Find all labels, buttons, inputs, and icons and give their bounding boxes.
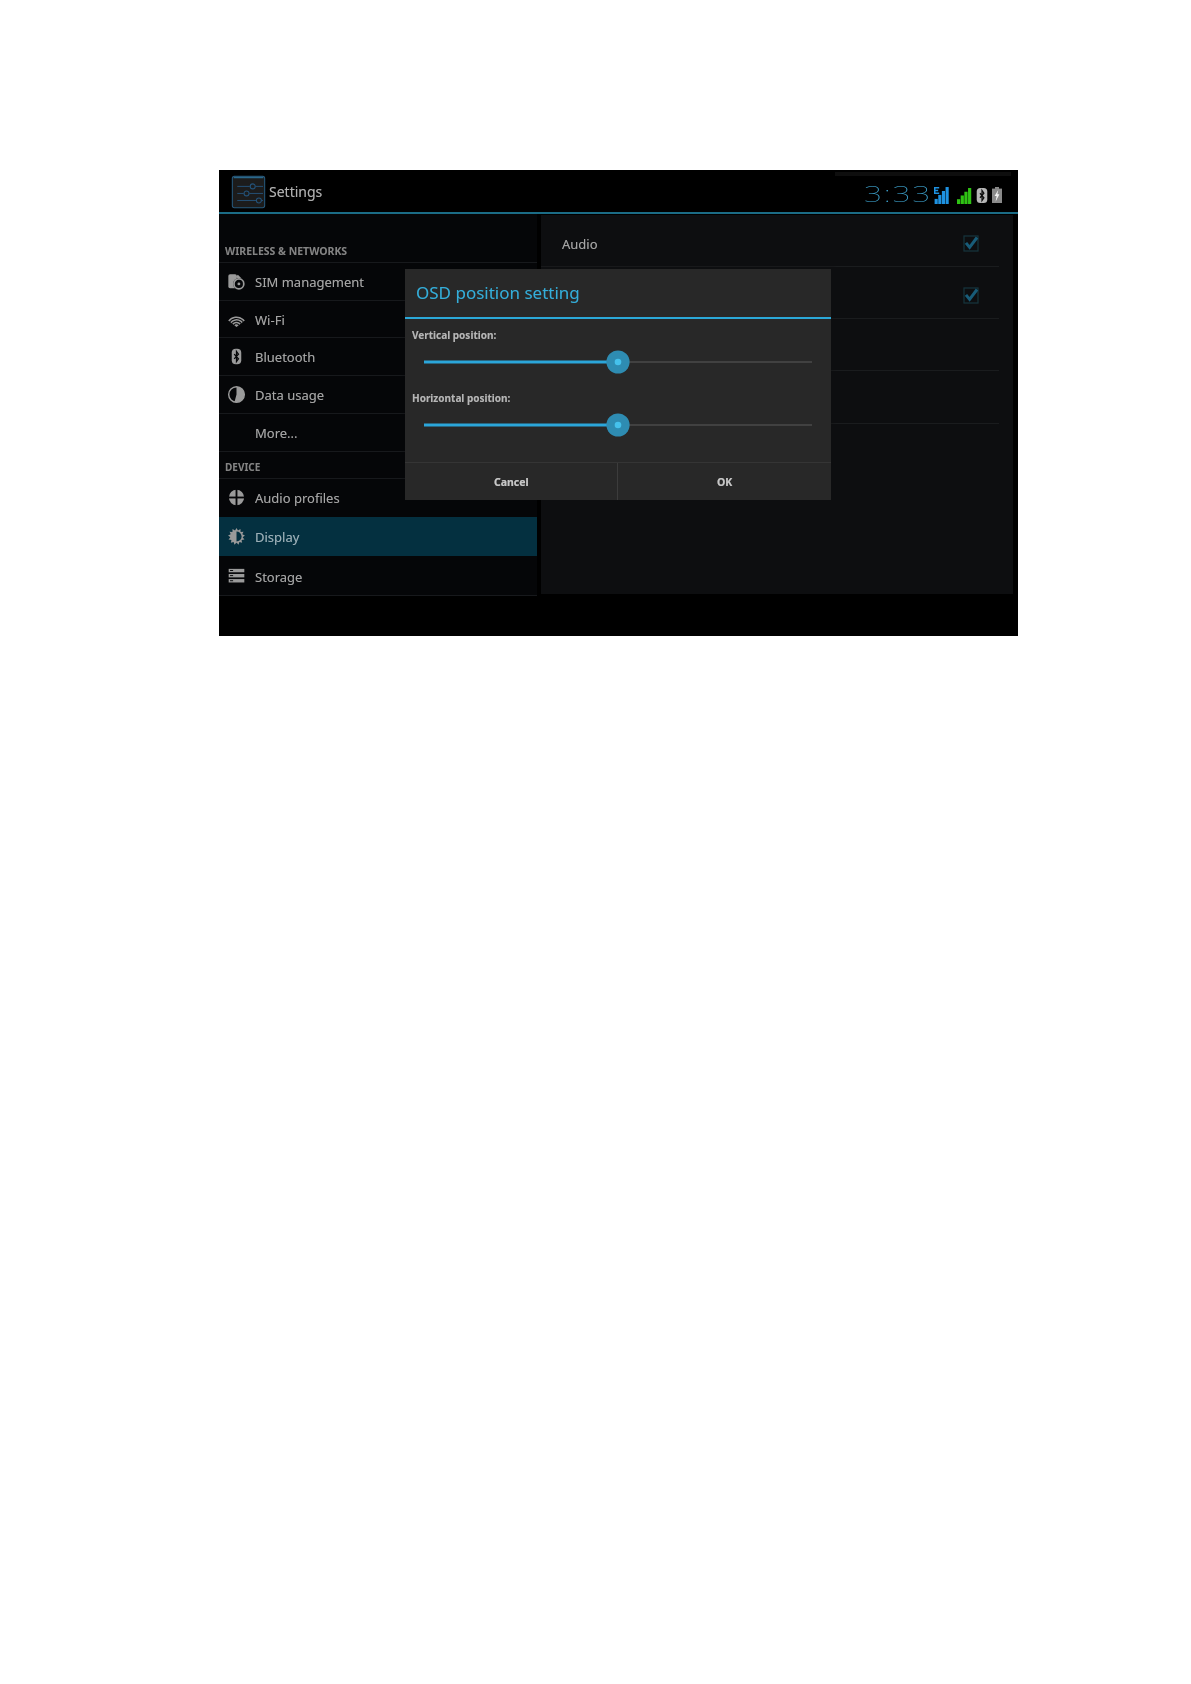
button[interactable]: SIM management — [219, 262, 537, 301]
staticText: WIRELESS & NETWORKS — [225, 244, 348, 258]
staticText: Vertical position: — [412, 328, 497, 342]
button[interactable]: Bluetooth — [219, 337, 537, 376]
staticText: OK — [717, 475, 733, 489]
button[interactable]: Audio — [541, 215, 1013, 266]
button[interactable]: Audio profiles — [219, 478, 537, 517]
button[interactable]: Horizontal position slider — [424, 412, 812, 438]
staticText: Storage — [255, 568, 303, 586]
staticText: Bluetooth — [255, 348, 316, 366]
button[interactable]: OK — [618, 463, 831, 500]
staticText: Display — [255, 528, 300, 546]
button[interactable]: Setting option 3 — [541, 319, 1013, 370]
staticText: OSD position setting — [416, 281, 580, 304]
button[interactable]: Display — [219, 517, 537, 556]
staticText: Horizontal position: — [412, 391, 511, 405]
staticText: Settings — [269, 182, 323, 201]
staticText: More... — [255, 424, 298, 442]
button[interactable]: Cancel — [405, 463, 617, 500]
staticText: 3:33 — [864, 180, 933, 210]
staticText: Cancel — [494, 475, 529, 489]
staticText: Data usage — [255, 386, 325, 404]
staticText: Audio profiles — [255, 489, 340, 507]
button[interactable]: Setting option 2 — [541, 267, 1013, 318]
button[interactable]: Wi-Fi — [219, 300, 537, 339]
button[interactable]: Status bar: clock, signal, Bluetooth, ba… — [859, 174, 1009, 208]
staticText: SIM management — [255, 273, 365, 291]
button[interactable]: Settings — [232, 176, 265, 208]
button[interactable]: Vertical position slider — [424, 349, 812, 375]
button[interactable]: Setting option 4 — [541, 371, 1013, 423]
button[interactable]: Data usage — [219, 375, 537, 414]
staticText: Wi-Fi — [255, 311, 285, 329]
button[interactable]: Storage — [219, 556, 537, 595]
button[interactable]: More... — [219, 413, 537, 452]
staticText: Audio — [562, 235, 598, 253]
staticText: DEVICE — [225, 460, 261, 474]
